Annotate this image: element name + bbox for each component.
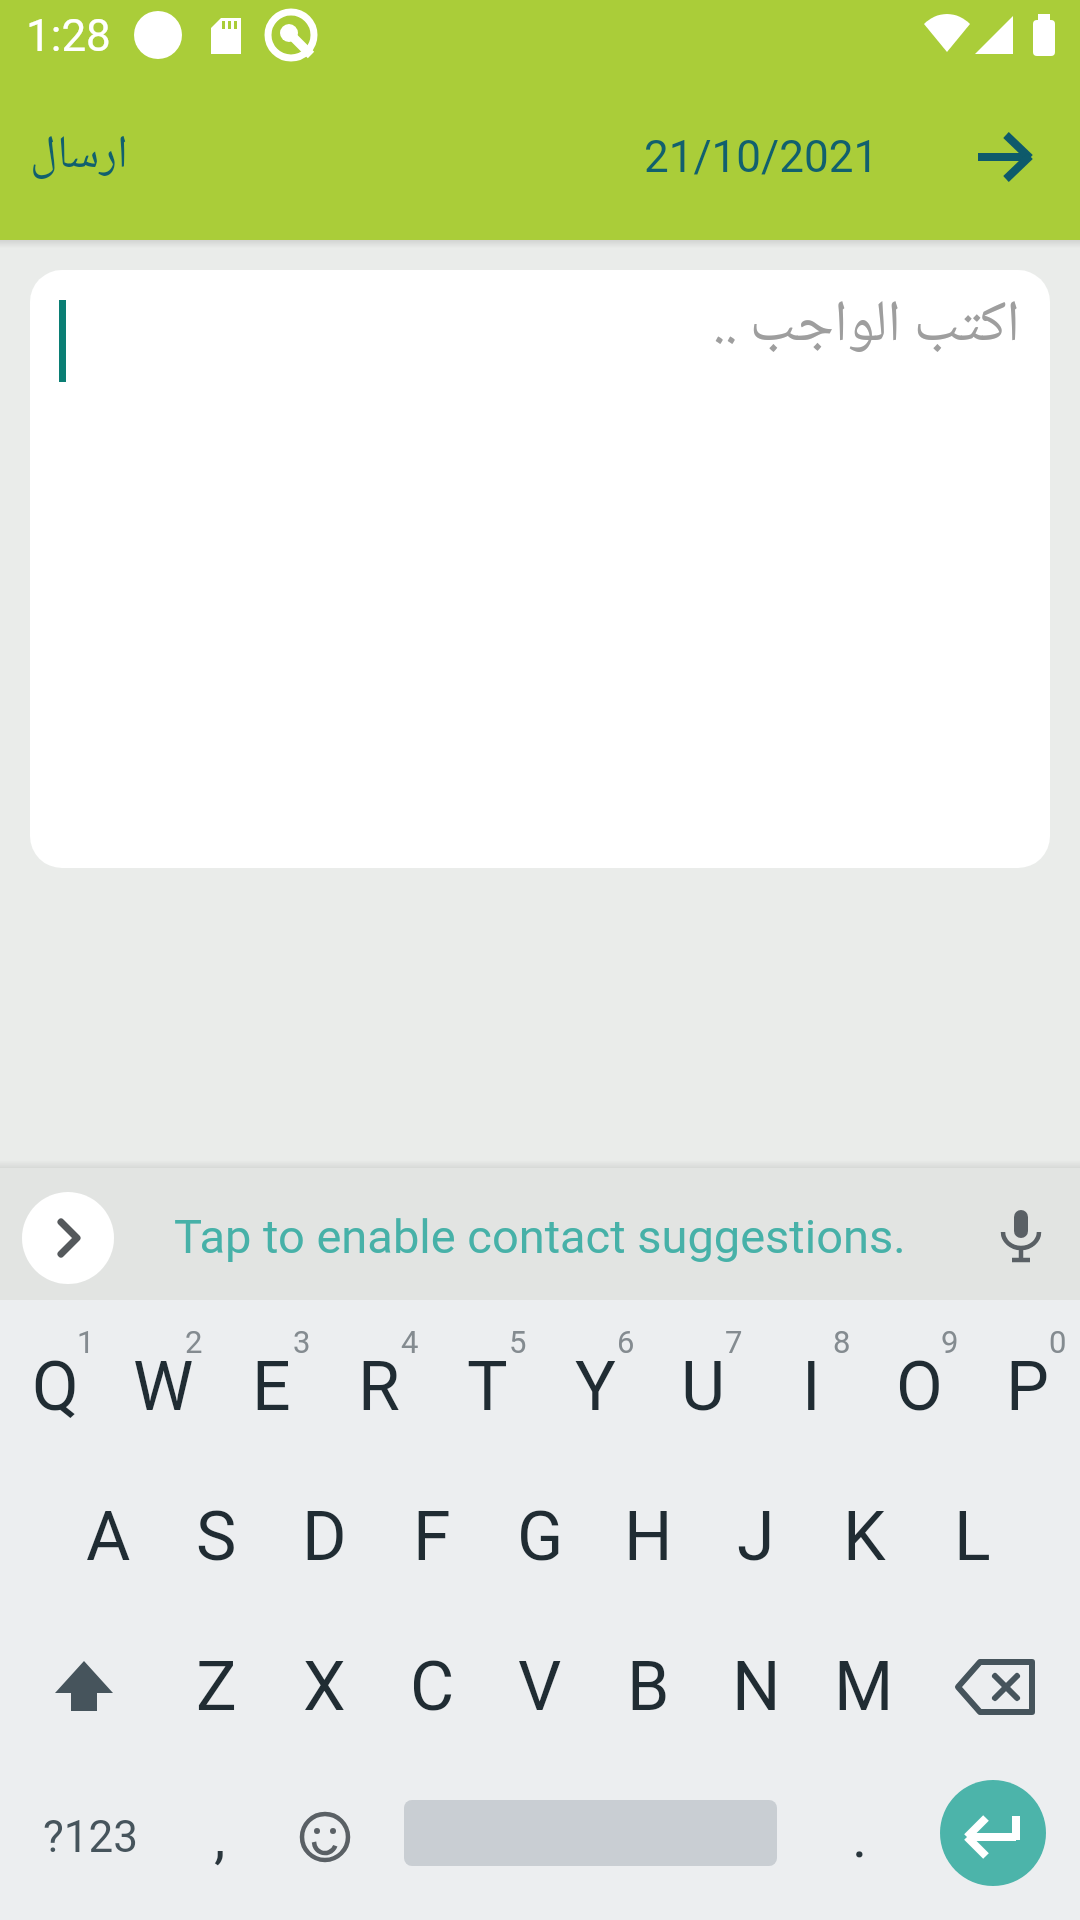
staticText: I bbox=[802, 1347, 821, 1427]
staticText: S bbox=[196, 1497, 237, 1577]
staticText: K bbox=[843, 1497, 886, 1577]
staticText: 21/10/2021 bbox=[644, 131, 879, 183]
button[interactable]: اكتب الواجب .. bbox=[30, 270, 1050, 868]
button[interactable]: , bbox=[166, 1762, 274, 1912]
button[interactable]: Tap to enable contact suggestions. bbox=[140, 1200, 940, 1272]
staticText: L bbox=[954, 1497, 991, 1577]
staticText: M bbox=[834, 1647, 894, 1727]
button[interactable]: N bbox=[702, 1612, 810, 1762]
staticText: R bbox=[358, 1347, 400, 1427]
staticText: G bbox=[517, 1497, 564, 1577]
staticText: N bbox=[732, 1647, 781, 1727]
staticText: A bbox=[86, 1497, 131, 1577]
button[interactable]: . bbox=[806, 1762, 914, 1912]
staticText: 5 bbox=[509, 1324, 527, 1360]
staticText: 3 bbox=[293, 1324, 311, 1360]
button[interactable]: 21/10/2021 bbox=[600, 107, 922, 207]
button[interactable]: M bbox=[810, 1612, 918, 1762]
staticText: 7 bbox=[725, 1324, 743, 1360]
staticText: ?123 bbox=[43, 1811, 138, 1863]
staticText: , bbox=[214, 1803, 226, 1871]
button[interactable]: U bbox=[649, 1312, 757, 1462]
staticText: J bbox=[737, 1497, 775, 1577]
button[interactable] bbox=[24, 1632, 144, 1742]
staticText: Tap to enable contact suggestions. bbox=[174, 1209, 906, 1264]
staticText: B bbox=[627, 1647, 670, 1727]
button[interactable] bbox=[22, 1192, 114, 1284]
staticText: 2 bbox=[185, 1324, 203, 1360]
staticText: T bbox=[467, 1347, 508, 1427]
button[interactable] bbox=[975, 1190, 1067, 1282]
button[interactable]: I bbox=[757, 1312, 865, 1462]
button[interactable]: R bbox=[325, 1312, 433, 1462]
button[interactable]: X bbox=[270, 1612, 378, 1762]
staticText: Y bbox=[575, 1347, 616, 1427]
staticText: D bbox=[302, 1497, 347, 1577]
staticText: 8 bbox=[833, 1324, 851, 1360]
staticText: V bbox=[518, 1647, 562, 1727]
staticText: X bbox=[303, 1647, 346, 1727]
button[interactable]: E bbox=[217, 1312, 325, 1462]
staticText: 1:28 bbox=[26, 10, 111, 62]
button[interactable]: T bbox=[433, 1312, 541, 1462]
staticText: E bbox=[252, 1347, 291, 1427]
staticText: O bbox=[896, 1347, 943, 1427]
button[interactable]: A bbox=[54, 1462, 162, 1612]
button[interactable]: ?123 bbox=[30, 1762, 150, 1912]
staticText: 6 bbox=[617, 1324, 635, 1360]
button[interactable] bbox=[940, 1780, 1046, 1886]
staticText: . bbox=[852, 1803, 868, 1871]
button[interactable] bbox=[960, 115, 1048, 199]
button[interactable]: K bbox=[810, 1462, 918, 1612]
staticText: F bbox=[413, 1497, 451, 1577]
button[interactable]: W bbox=[109, 1312, 217, 1462]
button[interactable]: Z bbox=[162, 1612, 270, 1762]
staticText: 1 bbox=[77, 1324, 95, 1360]
button[interactable]: L bbox=[918, 1462, 1026, 1612]
staticText: U bbox=[681, 1347, 726, 1427]
staticText: 9 bbox=[941, 1324, 959, 1360]
button[interactable]: C bbox=[378, 1612, 486, 1762]
button[interactable]: Y bbox=[541, 1312, 649, 1462]
button[interactable]: P bbox=[973, 1312, 1080, 1462]
button[interactable]: B bbox=[594, 1612, 702, 1762]
staticText: 4 bbox=[401, 1324, 419, 1360]
button[interactable] bbox=[270, 1782, 380, 1892]
button[interactable]: S bbox=[162, 1462, 270, 1612]
button[interactable]: H bbox=[594, 1462, 702, 1612]
button[interactable]: G bbox=[486, 1462, 594, 1612]
button[interactable]: D bbox=[270, 1462, 378, 1612]
staticText: C bbox=[410, 1647, 455, 1727]
staticText: H bbox=[624, 1497, 673, 1577]
button[interactable]: ارسال bbox=[30, 100, 230, 210]
button[interactable]: F bbox=[378, 1462, 486, 1612]
button[interactable]: J bbox=[702, 1462, 810, 1612]
staticText: W bbox=[133, 1347, 194, 1427]
button[interactable]: O bbox=[865, 1312, 973, 1462]
button[interactable]: Q bbox=[1, 1312, 109, 1462]
staticText: ارسال bbox=[30, 124, 128, 187]
staticText: Z bbox=[196, 1647, 237, 1727]
button[interactable] bbox=[936, 1632, 1056, 1742]
staticText: Q bbox=[32, 1347, 79, 1427]
staticText: اكتب الواجب .. bbox=[713, 286, 1020, 365]
staticText: 0 bbox=[1049, 1324, 1067, 1360]
button[interactable]: V bbox=[486, 1612, 594, 1762]
staticText: P bbox=[1006, 1347, 1049, 1427]
